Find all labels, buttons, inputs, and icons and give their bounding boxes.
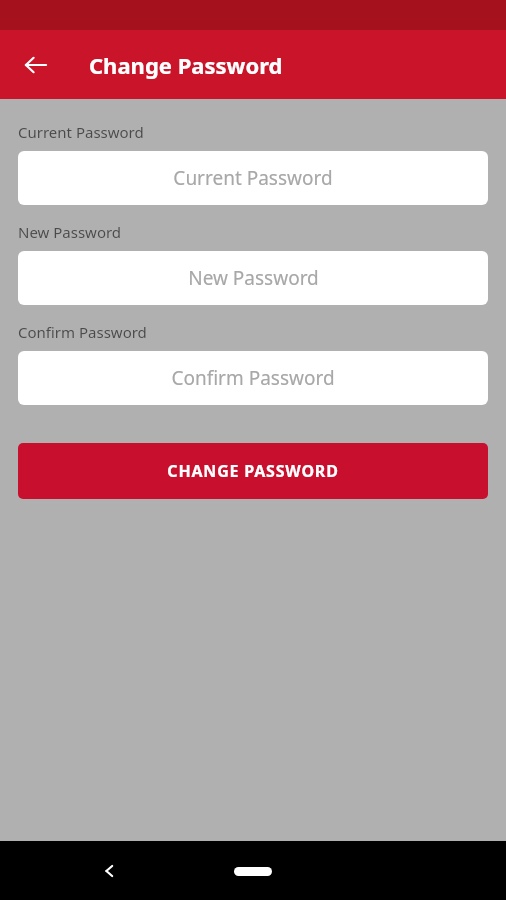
button[interactable]: CHANGE PASSWORD bbox=[18, 443, 488, 499]
button[interactable]: Home bbox=[226, 857, 280, 885]
staticText: New Password bbox=[188, 265, 319, 291]
button[interactable]: New Password bbox=[18, 251, 488, 305]
staticText: CHANGE PASSWORD bbox=[167, 460, 339, 482]
staticText: New Password bbox=[18, 222, 122, 242]
button[interactable]: Current Password bbox=[18, 151, 488, 205]
staticText: Current Password bbox=[173, 165, 333, 191]
staticText: Confirm Password bbox=[18, 322, 147, 342]
button[interactable]: Confirm Password bbox=[18, 351, 488, 405]
staticText: Confirm Password bbox=[171, 365, 335, 391]
staticText: Current Password bbox=[18, 122, 144, 142]
button[interactable]: Back bbox=[10, 39, 62, 91]
staticText: Change Password bbox=[89, 50, 283, 80]
button[interactable]: Back bbox=[86, 847, 134, 895]
